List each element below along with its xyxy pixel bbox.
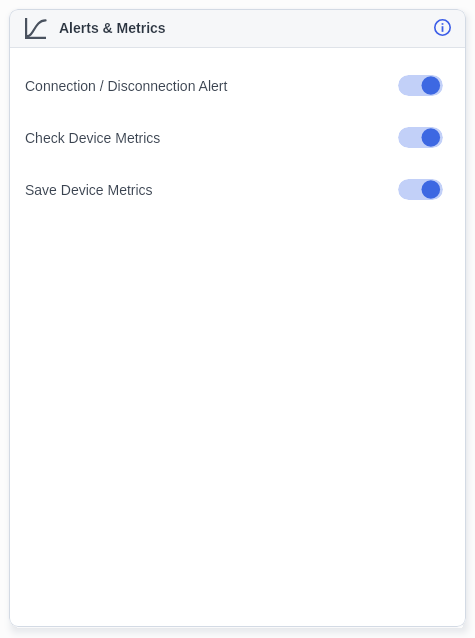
staticText: Save Device Metrics <box>25 182 153 198</box>
staticText: Connection / Disconnection Alert <box>25 78 228 94</box>
button[interactable]: Check Device Metrics <box>9 112 466 164</box>
staticText: Alerts & Metrics <box>59 20 166 36</box>
button[interactable]: Information <box>431 16 453 38</box>
button[interactable]: Save Device Metrics <box>9 164 466 216</box>
button[interactable]: Connection / Disconnection Alert <box>9 60 466 112</box>
button[interactable]: Check Device Metrics, on <box>398 127 443 148</box>
staticText: Check Device Metrics <box>25 130 161 146</box>
button[interactable]: Connection / Disconnection Alert, on <box>398 75 443 96</box>
button[interactable]: Save Device Metrics, on <box>398 179 443 200</box>
